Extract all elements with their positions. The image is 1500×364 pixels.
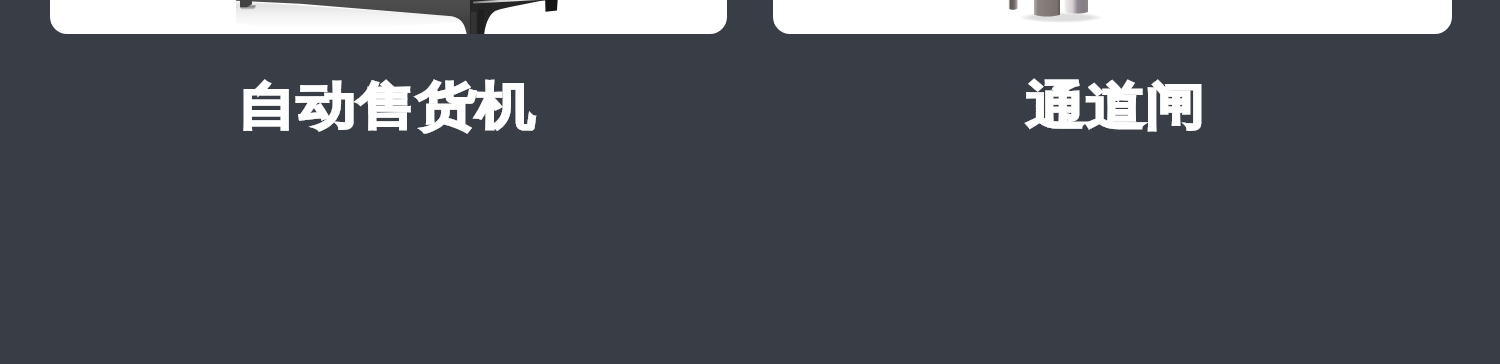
button[interactable]: 通道闸 分类	[773, 0, 1452, 144]
button[interactable]: 自动售货机 分类	[50, 0, 727, 144]
staticText: 自动售货机	[236, 75, 534, 139]
staticText: 通道闸	[1025, 75, 1204, 139]
